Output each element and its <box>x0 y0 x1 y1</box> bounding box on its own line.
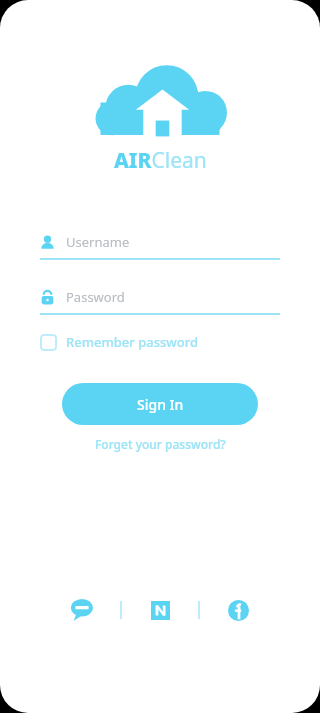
button[interactable]: Remember password <box>40 333 280 351</box>
staticText: Remember password <box>66 333 199 351</box>
button[interactable]: Sign in with Facebook <box>218 590 258 630</box>
button[interactable]: Username <box>40 233 280 260</box>
button[interactable]: Password <box>40 288 280 315</box>
button[interactable]: Sign in with Naver <box>140 590 180 630</box>
staticText: Username <box>66 233 130 251</box>
button[interactable]: Sign In <box>62 383 258 425</box>
staticText: Password <box>66 288 125 306</box>
staticText: AIRClean <box>114 146 207 175</box>
button[interactable]: Sign in with KakaoTalk <box>62 590 102 630</box>
button[interactable]: Forget your password? <box>89 433 232 455</box>
staticText: Sign In <box>137 395 184 414</box>
staticText: Forget your password? <box>95 436 226 452</box>
